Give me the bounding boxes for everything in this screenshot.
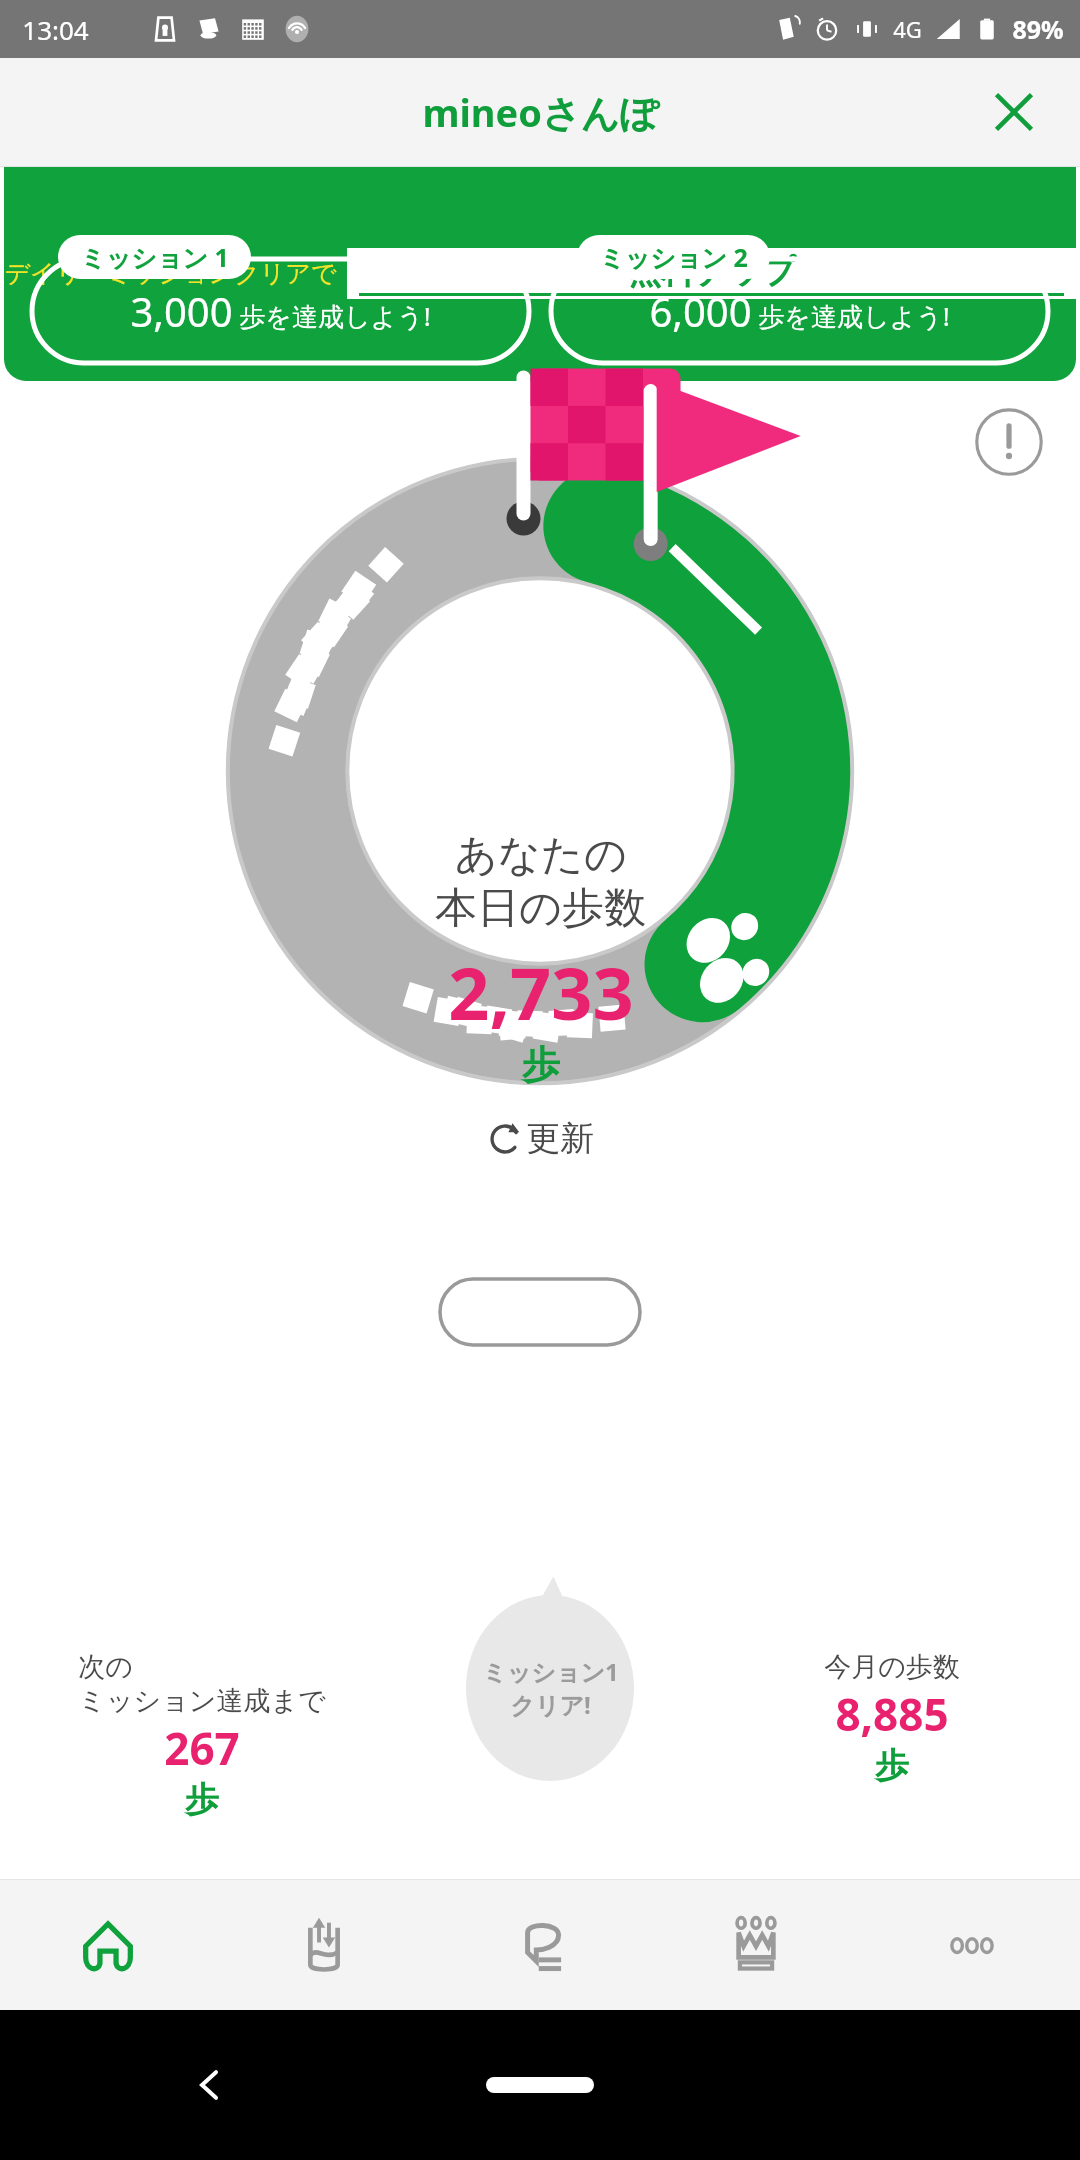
button[interactable]: Chat <box>432 1880 648 2010</box>
staticText: クリア! <box>510 1688 591 1721</box>
button[interactable]: Information <box>970 403 1048 481</box>
button[interactable]: More <box>864 1880 1080 2010</box>
button[interactable]: Home <box>0 1880 216 2010</box>
staticText: 2,733 <box>448 943 634 1041</box>
staticText: 歩 <box>185 1778 219 1821</box>
staticText: 歩 <box>875 1744 909 1787</box>
button[interactable]: Data <box>216 1880 432 2010</box>
staticText: 無料チップ <box>628 251 796 293</box>
staticText: 本日の歩数 <box>435 882 646 935</box>
staticText: ミッション1 <box>482 1655 619 1688</box>
staticText: ミッション 2 <box>599 240 748 274</box>
staticText: 3,000 <box>130 284 233 338</box>
button[interactable]: 6,000 <box>551 235 1048 363</box>
staticText: デイリーミッションクリアで <box>4 258 337 289</box>
staticText: 8,885 <box>835 1684 949 1744</box>
staticText: 更新 <box>526 1117 594 1160</box>
button[interactable]: Close <box>978 76 1050 148</box>
staticText: mineoさんぽ <box>422 86 659 138</box>
staticText: 次の <box>78 1650 133 1684</box>
staticText: 歩を達成しよう! <box>758 298 950 334</box>
staticText: あなたの <box>455 829 627 882</box>
staticText: 今月の歩数 <box>824 1650 960 1684</box>
staticText: 歩 <box>522 1041 560 1089</box>
staticText: ミッション 1 <box>80 240 229 274</box>
staticText: 4G <box>893 14 922 44</box>
staticText: 89% <box>1012 12 1064 46</box>
staticText: ミッション達成まで <box>78 1684 326 1718</box>
button[interactable]: 3,000 <box>32 235 529 363</box>
button[interactable]: 更新 <box>461 1107 621 1170</box>
staticText: 6,000 <box>649 284 752 338</box>
staticText: 267 <box>164 1718 240 1778</box>
staticText: 13:04 <box>22 12 89 47</box>
staticText: 歩を達成しよう! <box>239 298 431 334</box>
button[interactable]: Rewards <box>648 1880 864 2010</box>
